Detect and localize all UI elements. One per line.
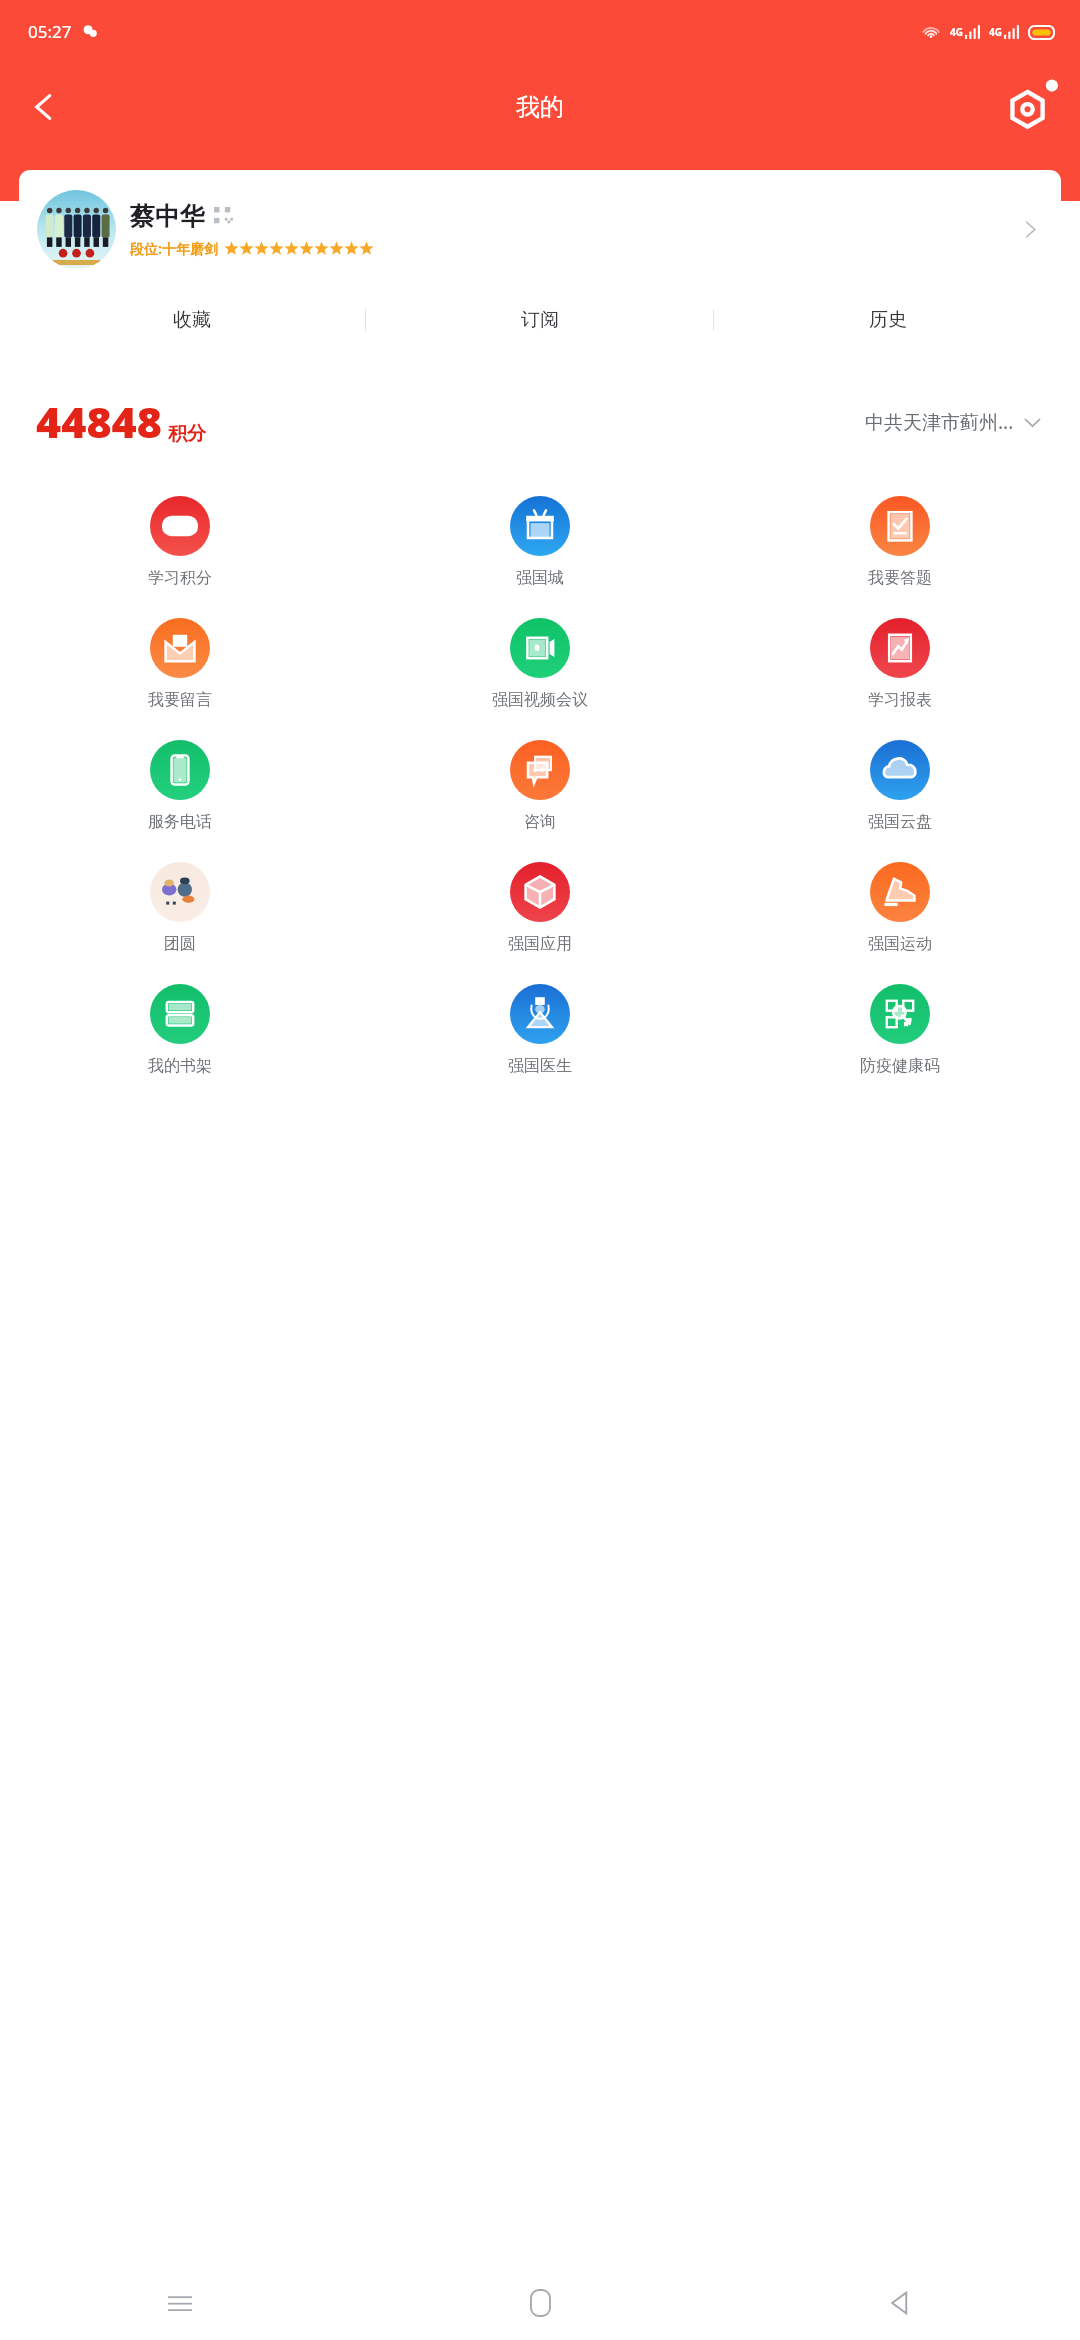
staticText: 强国运动 — [868, 934, 932, 954]
staticText: 团圆 — [164, 934, 196, 954]
staticText: 强国医生 — [508, 1056, 572, 1076]
staticText: 蔡中华 — [130, 201, 205, 232]
button[interactable]: 团圆 — [0, 855, 360, 977]
button[interactable]: 订阅 — [366, 288, 713, 352]
staticText: 我要答题 — [868, 568, 932, 588]
staticText: 4G — [950, 25, 963, 39]
staticText: 订阅 — [521, 308, 559, 332]
staticText: 积分 — [168, 422, 206, 446]
button[interactable]: 强国应用 — [360, 855, 720, 977]
staticText: 强国视频会议 — [492, 690, 588, 710]
staticText: 4G — [989, 25, 1002, 39]
button[interactable]: Settings — [1002, 78, 1060, 136]
staticText: 44848 — [36, 392, 162, 451]
staticText: 历史 — [869, 308, 907, 332]
button[interactable]: 防疫健康码 — [720, 977, 1080, 1099]
button[interactable]: 中共天津市蓟州... — [865, 409, 1061, 435]
button[interactable]: 蔡中华 — [19, 170, 1061, 288]
button[interactable]: Recents — [0, 2266, 360, 2340]
button[interactable]: 强国医生 — [360, 977, 720, 1099]
staticText: 强国云盘 — [868, 812, 932, 832]
staticText: 学习积分 — [148, 568, 212, 588]
button[interactable]: 强国云盘 — [720, 733, 1080, 855]
staticText: 收藏 — [173, 308, 211, 332]
button[interactable]: Back — [16, 79, 72, 135]
staticText: 05:27 — [28, 20, 72, 43]
button[interactable]: 我的书架 — [0, 977, 360, 1099]
staticText: 咨询 — [524, 812, 556, 832]
staticText: 中共天津市蓟州... — [865, 409, 1014, 435]
button[interactable]: Home — [360, 2266, 720, 2340]
button[interactable]: 我要答题 — [720, 489, 1080, 611]
staticText: 段位:十年磨剑 — [130, 239, 218, 258]
button[interactable]: 服务电话 — [0, 733, 360, 855]
staticText: 学习报表 — [868, 690, 932, 710]
staticText: 强国应用 — [508, 934, 572, 954]
button[interactable]: 强国视频会议 — [360, 611, 720, 733]
staticText: 服务电话 — [148, 812, 212, 832]
button[interactable]: 强国运动 — [720, 855, 1080, 977]
button[interactable]: 咨询 — [360, 733, 720, 855]
button[interactable]: 我要留言 — [0, 611, 360, 733]
button[interactable]: 学习报表 — [720, 611, 1080, 733]
staticText: 我的书架 — [148, 1056, 212, 1076]
button[interactable]: 强国城 — [360, 489, 720, 611]
button[interactable]: 收藏 — [19, 288, 365, 352]
button[interactable]: 学习积分 — [0, 489, 360, 611]
staticText: 防疫健康码 — [860, 1056, 940, 1076]
staticText: 我的 — [516, 92, 564, 122]
button[interactable]: Back — [720, 2266, 1080, 2340]
staticText: 强国城 — [516, 568, 564, 588]
button[interactable]: 历史 — [714, 288, 1061, 352]
staticText: 我要留言 — [148, 690, 212, 710]
